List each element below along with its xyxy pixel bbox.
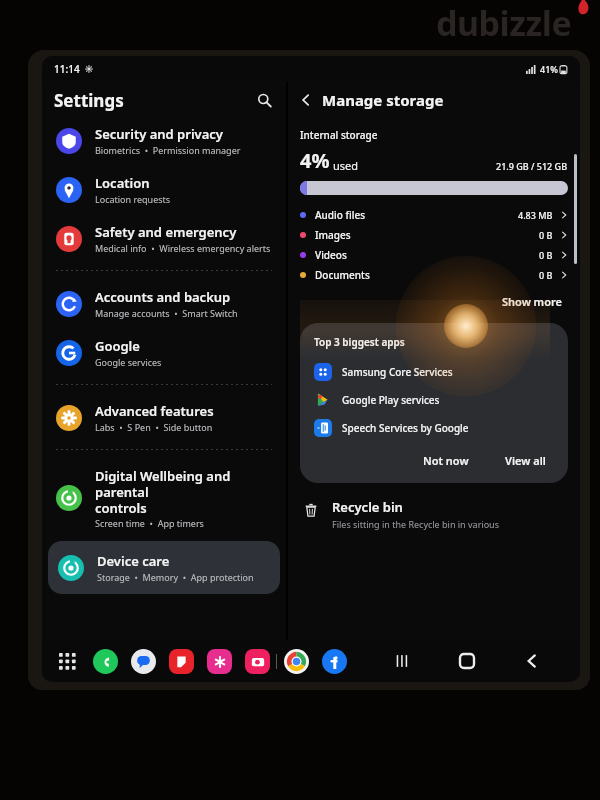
staticText: 0 B <box>539 229 553 241</box>
staticText: Google services <box>95 356 162 368</box>
staticText: Images <box>315 228 351 242</box>
staticText: Not now <box>423 453 469 468</box>
button[interactable]: Location <box>46 165 282 214</box>
button[interactable]: Back <box>515 644 549 678</box>
staticText: 11:14 <box>54 62 80 76</box>
staticText: Show more <box>502 294 562 309</box>
staticText: used <box>333 158 359 173</box>
staticText: 21.9 GB / 512 GB <box>496 160 568 172</box>
staticText: Manage storage <box>322 90 444 110</box>
staticText: Medical info • Wireless emergency alerts <box>95 242 271 254</box>
staticText: 4.83 MB <box>518 209 553 221</box>
staticText: Internal storage <box>300 128 378 142</box>
button[interactable]: Apps <box>54 648 81 675</box>
button[interactable]: Gallery <box>206 648 233 675</box>
staticText: Samsung Core Services <box>342 365 453 379</box>
staticText: Google Play services <box>342 393 440 407</box>
staticText: Videos <box>315 248 347 262</box>
staticText: Recycle bin <box>332 498 403 516</box>
staticText: Settings <box>54 89 124 112</box>
staticText: Audio files <box>315 208 365 222</box>
staticText: Security and privacy <box>95 125 223 143</box>
staticText: Google <box>95 337 140 355</box>
button[interactable]: Show more <box>496 291 568 312</box>
staticText: 0 B <box>539 269 553 281</box>
button[interactable]: Search settings <box>252 88 276 112</box>
staticText: Biometrics • Permission manager <box>95 144 241 156</box>
staticText: Location <box>95 174 150 192</box>
button[interactable]: Recent apps <box>385 644 419 678</box>
button[interactable]: Camera <box>244 648 271 675</box>
staticText: Manage accounts • Smart Switch <box>95 307 238 319</box>
button[interactable]: Digital Wellbeing and parental controls <box>46 458 282 538</box>
staticText: Location requests <box>95 193 171 205</box>
button[interactable]: Not now <box>415 450 477 471</box>
staticText: dubizzle <box>436 0 572 46</box>
button[interactable]: Accounts and backup <box>46 279 282 328</box>
button[interactable]: Messages <box>130 648 157 675</box>
button[interactable]: Google Play services <box>314 386 554 414</box>
button[interactable]: Facebook <box>321 648 348 675</box>
button[interactable]: Documents <box>300 265 568 285</box>
staticText: Device care <box>97 552 170 570</box>
staticText: Top 3 biggest apps <box>314 335 405 349</box>
staticText: Storage • Memory • App protection <box>97 571 254 583</box>
button[interactable]: Chrome <box>283 648 310 675</box>
button[interactable]: Notes <box>168 648 195 675</box>
staticText: Documents <box>315 268 370 282</box>
button[interactable]: Speech Services by Google <box>314 414 554 442</box>
button[interactable]: Samsung Core Services <box>314 358 554 386</box>
button[interactable]: Phone <box>92 648 119 675</box>
staticText: Files sitting in the Recycle bin in vari… <box>332 518 499 530</box>
staticText: Advanced features <box>95 402 214 420</box>
button[interactable]: Safety and emergency <box>46 214 282 263</box>
button[interactable]: Back <box>294 88 318 112</box>
button[interactable]: Videos <box>300 245 568 265</box>
staticText: Digital Wellbeing and parental controls <box>95 467 272 516</box>
button[interactable]: Audio files <box>300 205 568 225</box>
button[interactable]: Advanced features <box>46 393 282 442</box>
button[interactable]: Security and privacy <box>46 116 282 165</box>
button[interactable]: Device care <box>48 541 280 594</box>
staticText: Screen time • App timers <box>95 517 204 529</box>
staticText: View all <box>505 453 546 468</box>
staticText: 0 B <box>539 249 553 261</box>
button[interactable]: Home <box>450 644 484 678</box>
button[interactable]: Google <box>46 328 282 377</box>
button[interactable]: View all <box>497 450 554 471</box>
staticText: Speech Services by Google <box>342 421 469 435</box>
staticText: Accounts and backup <box>95 288 231 306</box>
staticText: 41% <box>540 63 558 75</box>
staticText: 4% <box>300 147 330 174</box>
button[interactable]: Recycle bin <box>300 496 568 532</box>
staticText: Labs • S Pen • Side button <box>95 421 213 433</box>
button[interactable]: Images <box>300 225 568 245</box>
staticText: Safety and emergency <box>95 223 237 241</box>
